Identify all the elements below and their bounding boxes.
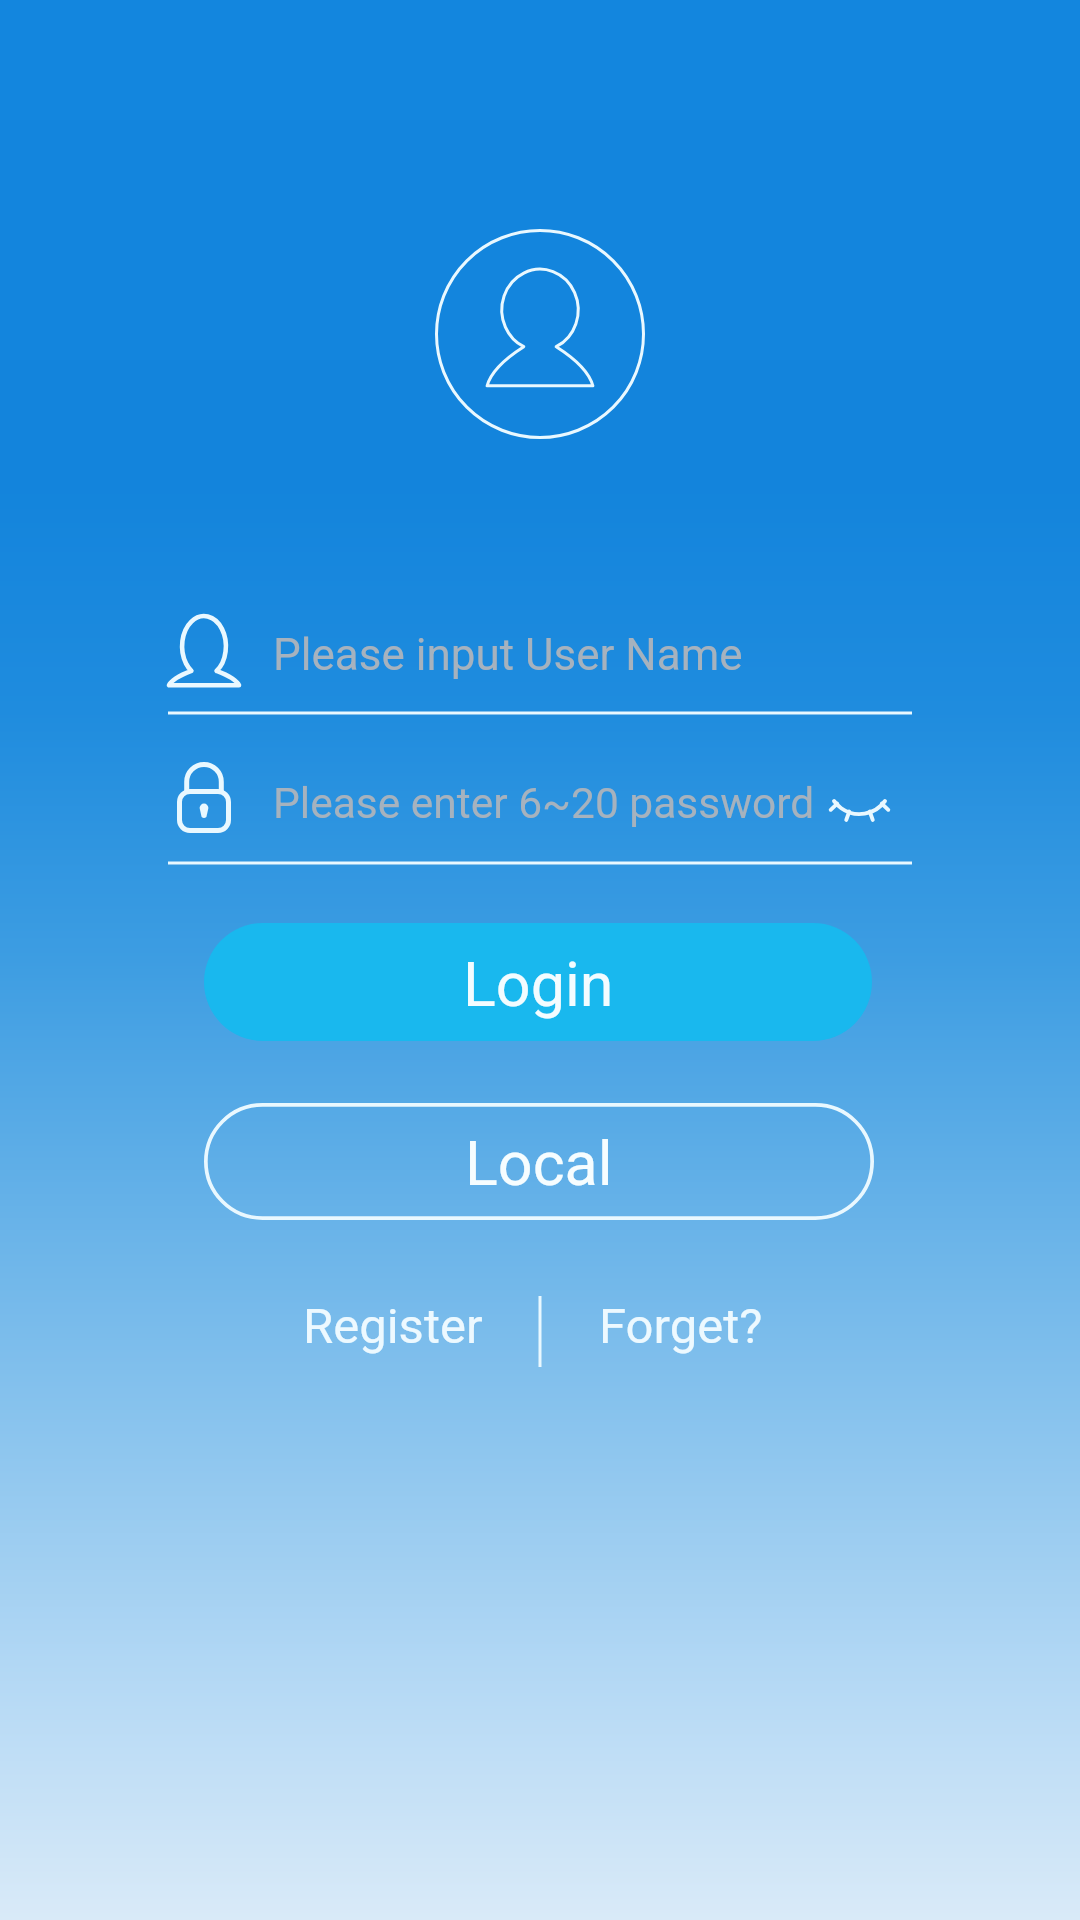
button[interactable]: Show password [815, 758, 895, 846]
button[interactable]: Forget? [586, 1288, 776, 1364]
staticText: Forget? [599, 1298, 763, 1355]
button[interactable]: Local [204, 1103, 874, 1220]
button[interactable]: Login [204, 923, 872, 1041]
other: Account avatar [435, 229, 645, 439]
button[interactable]: Register [288, 1288, 498, 1364]
staticText: Please enter 6~20 password [273, 779, 815, 829]
staticText: Register [303, 1298, 483, 1355]
button[interactable]: Please enter 6~20 password [168, 750, 912, 864]
staticText: Login [463, 949, 614, 1020]
staticText: Local [465, 1128, 613, 1199]
button[interactable]: Please input User Name [168, 600, 912, 714]
staticText: Please input User Name [273, 629, 743, 681]
